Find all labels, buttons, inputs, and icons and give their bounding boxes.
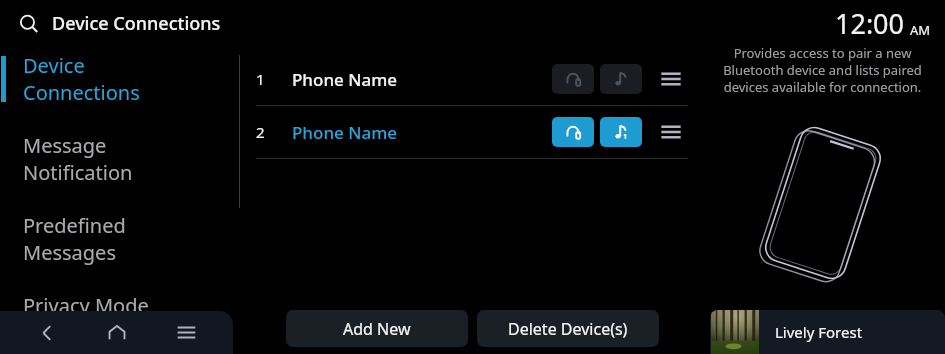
staticText: 2 [256,122,265,142]
staticText: 12:00 [835,5,905,42]
staticText: Add New [343,318,411,340]
staticText: 1 [256,69,265,89]
staticText: AM [910,21,931,39]
staticText: Phone Name [292,121,398,144]
button[interactable]: Back [25,311,69,354]
button[interactable]: Privacy Mode [0,288,232,323]
staticText: Phone Name [292,68,398,91]
button[interactable]: 2 [256,106,688,158]
button[interactable]: Reorder device [656,64,686,94]
button[interactable]: Add New [286,310,468,347]
other: Search [18,13,40,35]
staticText: Notification [23,159,133,186]
staticText: Connections [23,79,140,106]
button[interactable]: Media audio [600,64,642,94]
button[interactable]: Device [0,48,232,110]
staticText: Messages [23,239,116,266]
button[interactable]: Phone audio [552,64,594,94]
staticText: Device Connections [52,11,221,36]
staticText: Message [23,132,107,159]
button[interactable]: Reorder device [656,117,686,147]
button[interactable]: Predefined [0,208,232,270]
staticText: Predefined [23,212,126,239]
button[interactable]: Search [18,11,229,36]
button[interactable]: Media audio [600,117,642,147]
button[interactable]: Menu [164,311,208,354]
staticText: Device [23,52,85,79]
button[interactable]: Lively Forest [710,310,945,354]
button[interactable]: 1 [256,53,688,105]
staticText: Provides access to pair a new Bluetooth … [722,44,923,96]
button[interactable]: Delete Device(s) [477,310,659,347]
staticText: Privacy Mode [23,292,149,319]
button[interactable]: Phone audio [552,117,594,147]
button[interactable]: Message [0,128,232,190]
staticText: Lively Forest [775,322,863,342]
staticText: Delete Device(s) [508,318,628,340]
button[interactable]: Home [95,311,139,354]
